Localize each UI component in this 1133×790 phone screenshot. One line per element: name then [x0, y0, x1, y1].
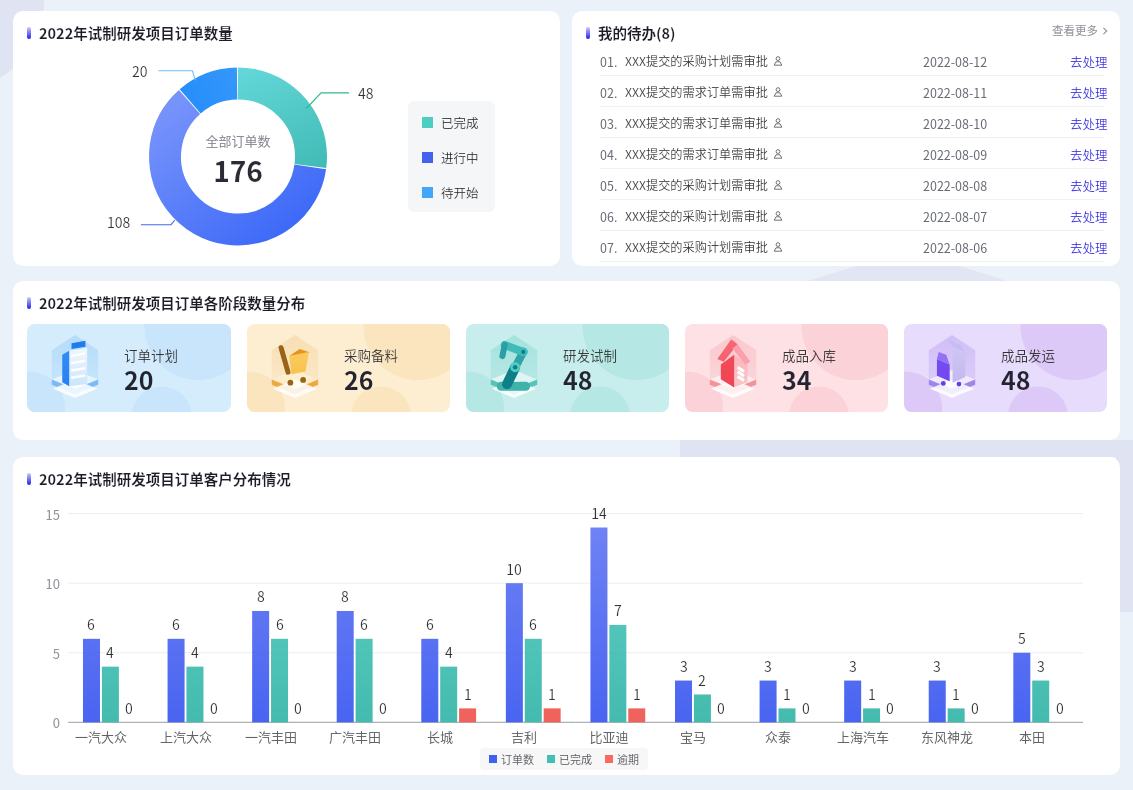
staticText: 研发试制: [563, 345, 617, 365]
staticText: 采购备料: [344, 345, 398, 365]
button[interactable]: 07.: [572, 231, 1120, 262]
staticText: 14: [585, 503, 613, 523]
staticText: 比亚迪: [566, 727, 652, 746]
staticText: 已完成: [441, 113, 479, 131]
staticText: 成品入库: [782, 345, 836, 365]
button[interactable]: 05.: [572, 169, 1120, 200]
button[interactable]: 01.: [572, 45, 1120, 76]
staticText: 众泰: [735, 727, 821, 746]
staticText: 7: [604, 600, 632, 620]
staticText: 6: [519, 614, 547, 634]
staticText: 5: [1008, 628, 1036, 648]
staticText: 2022-08-09: [923, 145, 988, 163]
staticText: 上海汽车: [820, 727, 906, 746]
staticText: 吉利: [481, 727, 567, 746]
staticText: 我的待办(8): [598, 22, 676, 43]
staticText: 02.: [600, 83, 618, 101]
staticText: XXX提交的采购计划需审批: [625, 52, 768, 70]
staticText: 0: [369, 698, 397, 718]
staticText: 8: [247, 586, 275, 606]
button[interactable]: 成品入库: [685, 324, 888, 412]
staticText: 查看更多: [1052, 22, 1098, 39]
staticText: 去处理: [1070, 176, 1108, 194]
staticText: 01.: [600, 52, 618, 70]
staticText: 6: [350, 614, 378, 634]
staticText: 0: [32, 713, 60, 732]
staticText: 3: [1027, 656, 1055, 676]
button[interactable]: 02.: [572, 76, 1120, 107]
staticText: 已完成: [559, 751, 592, 767]
staticText: 进行中: [441, 148, 479, 166]
staticText: 去处理: [1070, 238, 1108, 256]
staticText: 本田: [989, 727, 1075, 746]
staticText: 108: [107, 212, 131, 232]
staticText: 待开始: [441, 183, 479, 201]
staticText: 去处理: [1070, 207, 1108, 225]
staticText: 4: [435, 642, 463, 662]
button[interactable]: 03.: [572, 107, 1120, 138]
staticText: 成品发运: [1001, 345, 1055, 365]
staticText: XXX提交的需求订单需审批: [625, 114, 768, 132]
staticText: 去处理: [1070, 145, 1108, 163]
button[interactable]: 成品发运: [904, 324, 1107, 412]
staticText: 34: [782, 361, 812, 397]
staticText: 2022-08-11: [923, 83, 988, 101]
staticText: 东风神龙: [904, 727, 990, 746]
staticText: 4: [96, 642, 124, 662]
staticText: 0: [792, 698, 820, 718]
staticText: 3: [923, 656, 951, 676]
button[interactable]: 研发试制: [466, 324, 669, 412]
staticText: 5: [32, 644, 60, 663]
staticText: XXX提交的采购计划需审批: [625, 176, 768, 194]
staticText: 长城: [397, 727, 483, 746]
staticText: XXX提交的需求订单需审批: [625, 83, 768, 101]
staticText: 48: [1001, 361, 1031, 397]
staticText: 04.: [600, 145, 618, 163]
button[interactable]: 采购备料: [247, 324, 450, 412]
staticText: 0: [284, 698, 312, 718]
staticText: 0: [200, 698, 228, 718]
button[interactable]: 04.: [572, 138, 1120, 169]
staticText: 上汽大众: [143, 727, 229, 746]
staticText: 1: [623, 684, 651, 704]
staticText: 20: [132, 61, 148, 81]
staticText: 去处理: [1070, 114, 1108, 132]
staticText: 03.: [600, 114, 618, 132]
button[interactable]: 06.: [572, 200, 1120, 231]
staticText: 26: [344, 361, 374, 397]
staticText: 2022年试制研发项目订单数量: [39, 22, 233, 43]
staticText: 1: [454, 684, 482, 704]
staticText: 06.: [600, 207, 618, 225]
staticText: 4: [181, 642, 209, 662]
staticText: 0: [707, 698, 735, 718]
staticText: 6: [77, 614, 105, 634]
staticText: 6: [266, 614, 294, 634]
staticText: XXX提交的需求订单需审批: [625, 145, 768, 163]
staticText: 3: [754, 656, 782, 676]
staticText: 8: [331, 586, 359, 606]
staticText: 05.: [600, 176, 618, 194]
staticText: 2022年试制研发项目订单各阶段数量分布: [39, 292, 306, 313]
staticText: 1: [773, 684, 801, 704]
staticText: 逾期: [617, 751, 639, 767]
staticText: 0: [115, 698, 143, 718]
staticText: XXX提交的采购计划需审批: [625, 207, 768, 225]
staticText: 0: [876, 698, 904, 718]
staticText: 去处理: [1070, 83, 1108, 101]
staticText: 3: [670, 656, 698, 676]
staticText: 2022-08-10: [923, 114, 988, 132]
staticText: 176: [190, 150, 286, 191]
staticText: 15: [32, 505, 60, 524]
button[interactable]: 查看更多: [1052, 22, 1109, 39]
staticText: 3: [839, 656, 867, 676]
staticText: 0: [1046, 698, 1074, 718]
staticText: 1: [942, 684, 970, 704]
staticText: 07.: [600, 238, 618, 256]
staticText: 2022-08-06: [923, 238, 988, 256]
staticText: 2022年试制研发项目订单客户分布情况: [39, 468, 291, 489]
staticText: 一汽大众: [58, 727, 144, 746]
staticText: 6: [162, 614, 190, 634]
button[interactable]: 订单计划: [27, 324, 231, 412]
staticText: 一汽丰田: [228, 727, 314, 746]
staticText: 10: [500, 559, 528, 579]
